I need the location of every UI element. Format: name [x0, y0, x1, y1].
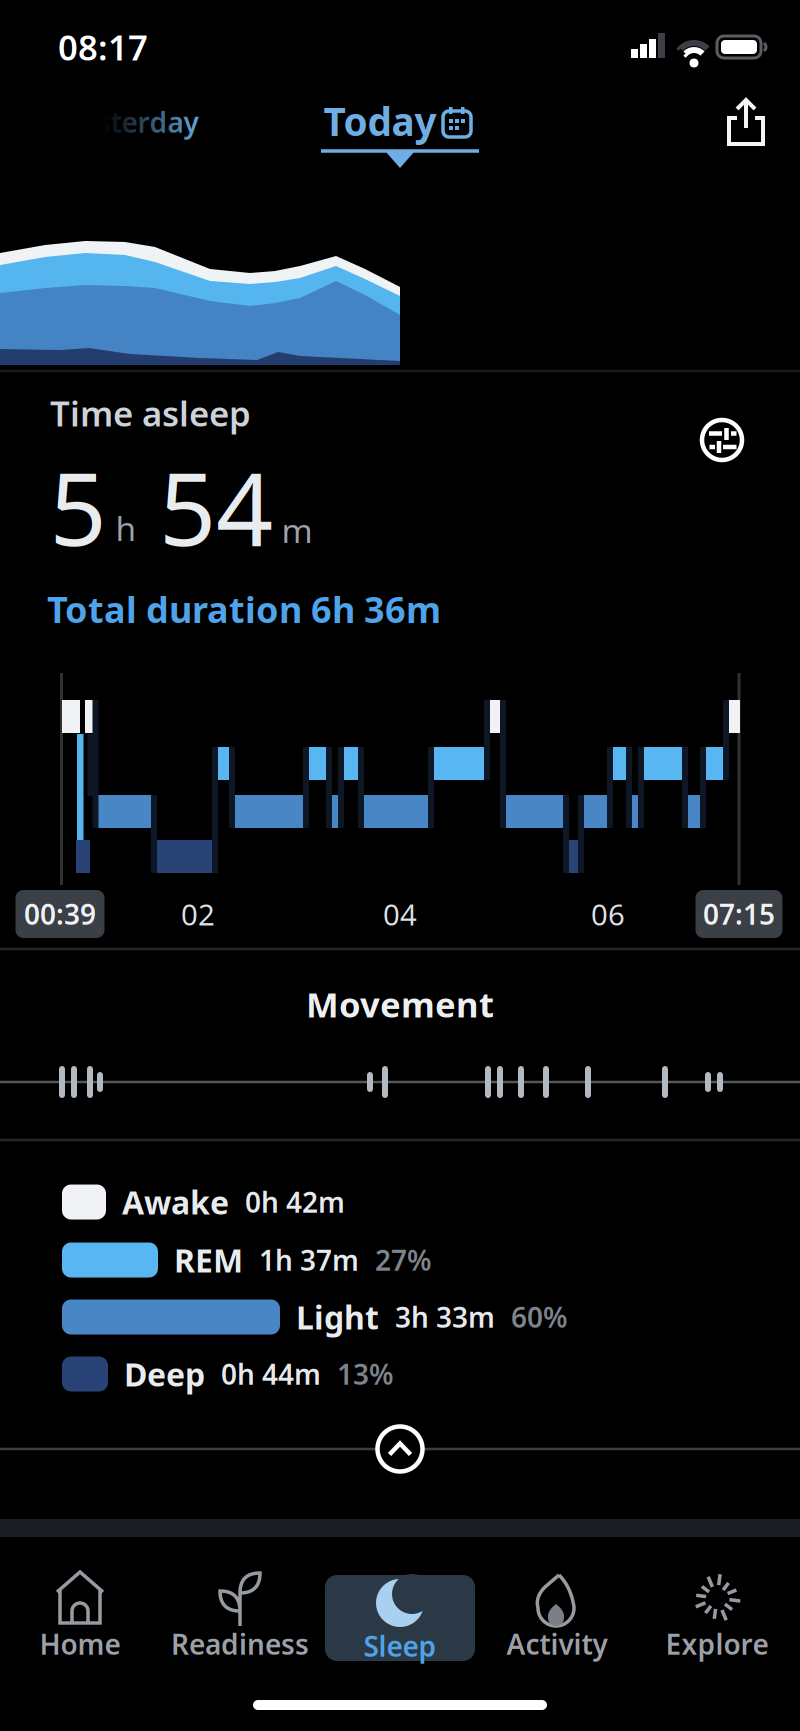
staticText: 0h 44m	[221, 1355, 321, 1393]
staticText: h	[115, 506, 136, 550]
staticText: Explore	[665, 1625, 768, 1663]
staticText: Deep	[124, 1353, 205, 1395]
staticText: 0h 42m	[245, 1183, 345, 1221]
staticText: 06	[591, 894, 625, 933]
staticText: 13%	[337, 1355, 394, 1393]
staticText: Readiness	[171, 1625, 309, 1663]
button[interactable]	[692, 410, 752, 470]
staticText: 00:39	[24, 895, 96, 933]
staticText: Awake	[122, 1181, 229, 1223]
button[interactable]: 00:39	[0, 886, 135, 942]
staticText: Total duration 6h 36m	[47, 585, 441, 633]
button[interactable]	[374, 1423, 426, 1475]
staticText: Sleep	[363, 1627, 436, 1665]
staticText: Movement	[306, 981, 494, 1027]
button[interactable]	[716, 92, 776, 152]
button[interactable]: Yesterday	[0, 92, 292, 152]
staticText: 54	[159, 441, 273, 573]
button[interactable]: Sleep	[325, 1575, 475, 1661]
staticText: m	[281, 508, 312, 552]
staticText: REM	[174, 1239, 243, 1281]
button[interactable]: Home	[30, 1571, 130, 1661]
staticText: 60%	[511, 1298, 568, 1336]
staticText: 07:15	[703, 895, 775, 933]
button[interactable]: Readiness	[170, 1571, 310, 1661]
staticText: Home	[39, 1625, 120, 1663]
staticText: 04	[383, 894, 417, 933]
staticText: Activity	[506, 1625, 607, 1663]
staticText: 1h 37m	[259, 1241, 359, 1279]
staticText: Time asleep	[50, 390, 251, 436]
staticText: 3h 33m	[395, 1298, 495, 1336]
staticText: Today	[323, 95, 436, 147]
staticText: 27%	[375, 1241, 432, 1279]
staticText: 08:17	[58, 24, 148, 70]
button[interactable]: Explore	[657, 1571, 777, 1661]
button[interactable]: Today	[290, 89, 490, 153]
button[interactable]: 07:15	[664, 886, 800, 942]
staticText: Yesterday	[65, 103, 198, 141]
button[interactable]: Activity	[497, 1571, 617, 1661]
staticText: Light	[296, 1296, 379, 1338]
staticText: 02	[181, 894, 215, 933]
staticText: 5	[49, 441, 106, 573]
